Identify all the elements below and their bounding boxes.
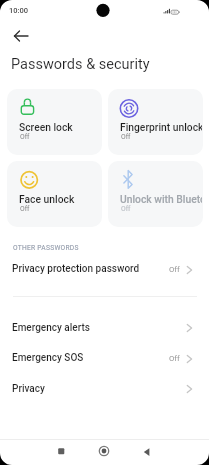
- staticText: Off: [20, 205, 30, 213]
- staticText: Emergency alerts: [12, 322, 90, 334]
- staticText: Privacy protection password: [12, 263, 140, 275]
- staticText: Unlock with Bluetooth device: [120, 193, 202, 205]
- staticText: Off: [169, 354, 180, 363]
- button[interactable]: Privacy: [0, 374, 209, 404]
- staticText: Screen lock: [19, 121, 101, 133]
- staticText: Fingerprint unlock: [120, 121, 202, 133]
- staticText: Off: [20, 133, 30, 141]
- staticText: Emergency SOS: [12, 352, 84, 364]
- button[interactable]: Emergency alerts: [0, 313, 209, 343]
- button[interactable]: Face unlock: [7, 161, 102, 227]
- staticText: OTHER PASSWORDS: [13, 244, 79, 252]
- staticText: Off: [121, 133, 131, 141]
- staticText: 10:00: [9, 6, 29, 15]
- staticText: Privacy: [12, 383, 45, 395]
- button[interactable]: Unlock with Bluetooth device: [108, 161, 203, 227]
- button[interactable]: Screen lock: [7, 89, 102, 155]
- button[interactable]: [136, 441, 157, 462]
- button[interactable]: [6, 26, 34, 46]
- staticText: Passwords & security: [11, 56, 150, 73]
- staticText: Face unlock: [19, 193, 101, 205]
- button[interactable]: Emergency SOS: [0, 343, 209, 373]
- button[interactable]: Privacy protection password: [0, 254, 209, 284]
- button[interactable]: Fingerprint unlock: [108, 89, 203, 155]
- staticText: Off: [121, 205, 131, 213]
- button[interactable]: [93, 440, 115, 462]
- button[interactable]: [51, 441, 72, 462]
- staticText: Off: [169, 265, 180, 274]
